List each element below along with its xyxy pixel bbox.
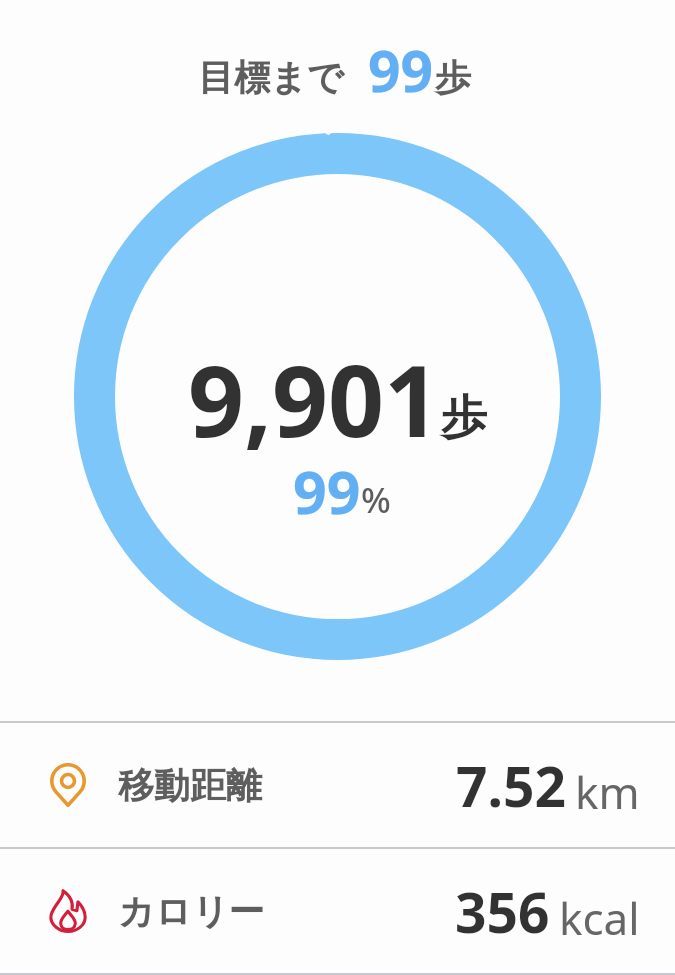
staticText: 歩 [441, 389, 487, 447]
staticText: kcal [559, 888, 640, 948]
staticText: 7.52 [456, 748, 566, 823]
button[interactable]: Distance [0, 723, 675, 847]
button[interactable]: Calories [0, 849, 675, 973]
staticText: 99 [368, 31, 434, 109]
staticText: 356 [455, 874, 550, 949]
staticText: 99 [293, 451, 361, 531]
staticText: 移動距離 [118, 763, 262, 808]
staticText: km [575, 762, 640, 822]
staticText: % [361, 476, 391, 524]
staticText: カロリー [118, 889, 265, 934]
staticText: 歩 [435, 55, 471, 100]
staticText: 目標まで [198, 55, 344, 100]
staticText: 9,901 [188, 332, 441, 465]
